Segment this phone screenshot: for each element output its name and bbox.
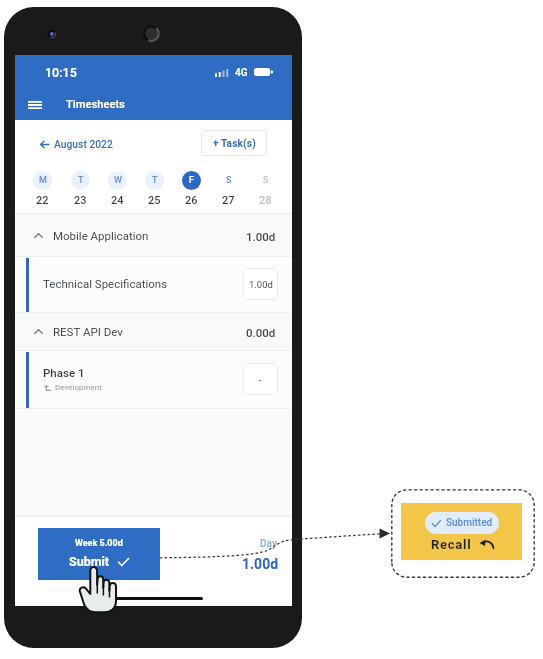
staticText: 25: [148, 194, 161, 207]
button[interactable]: + Task(s): [201, 130, 267, 156]
button[interactable]: Open navigation menu: [21, 91, 48, 118]
staticText: Day: [260, 538, 277, 550]
staticText: 28: [259, 194, 272, 207]
button[interactable]: Phase 1: [15, 351, 292, 408]
button[interactable]: M: [23, 160, 61, 213]
staticText: 1.00d: [249, 279, 273, 290]
staticText: W: [114, 175, 122, 186]
button[interactable]: S: [247, 160, 284, 213]
button[interactable]: -: [243, 363, 278, 395]
button[interactable]: Technical Specifications: [15, 257, 292, 312]
staticText: M: [39, 175, 47, 186]
staticText: 23: [74, 194, 87, 207]
staticText: F: [189, 175, 194, 186]
staticText: Timesheets: [66, 98, 125, 111]
button[interactable]: T: [136, 160, 173, 213]
button[interactable]: August 2022: [35, 134, 118, 154]
staticText: T: [78, 175, 84, 186]
staticText: 22: [36, 194, 49, 207]
staticText: 0.00d: [246, 326, 276, 339]
button[interactable]: F: [173, 160, 210, 213]
staticText: S: [263, 175, 269, 186]
button[interactable]: 1.00d: [243, 268, 278, 300]
button[interactable]: W: [99, 160, 136, 213]
staticText: 10:15: [45, 65, 77, 80]
button[interactable]: S: [210, 160, 247, 213]
button[interactable]: Submitted: [401, 503, 522, 560]
button[interactable]: Week 5.00d: [38, 528, 160, 580]
staticText: Recall: [431, 537, 472, 552]
staticText: Technical Specifications: [43, 277, 168, 290]
staticText: August 2022: [54, 138, 113, 150]
button[interactable]: REST API Dev: [15, 313, 292, 350]
staticText: 26: [185, 194, 198, 207]
staticText: + Task(s): [213, 138, 256, 150]
staticText: 24: [111, 194, 124, 207]
staticText: Submit: [69, 554, 110, 569]
staticText: REST API Dev: [53, 325, 123, 338]
staticText: 4G: [235, 67, 248, 79]
staticText: Phase 1: [43, 366, 85, 379]
button[interactable]: Mobile Application: [15, 214, 292, 256]
staticText: T: [152, 175, 158, 186]
staticText: 1.00d: [246, 230, 276, 243]
staticText: Development: [55, 383, 102, 392]
staticText: Submitted: [446, 517, 493, 529]
button[interactable]: T: [61, 160, 99, 213]
staticText: S: [226, 175, 232, 186]
staticText: -: [259, 374, 262, 385]
staticText: Week 5.00d: [75, 538, 123, 549]
staticText: 1.00d: [242, 556, 279, 572]
staticText: Mobile Application: [53, 229, 149, 242]
staticText: 27: [222, 194, 235, 207]
